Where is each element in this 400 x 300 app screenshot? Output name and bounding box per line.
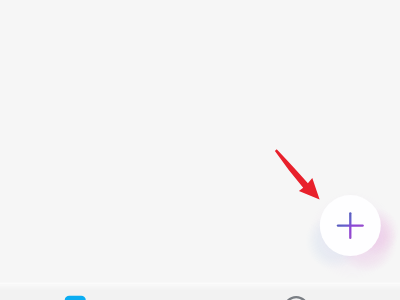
button[interactable]: Add: [320, 195, 381, 256]
button[interactable]: Chats: [37, 284, 113, 300]
button[interactable]: Profile: [258, 284, 334, 300]
